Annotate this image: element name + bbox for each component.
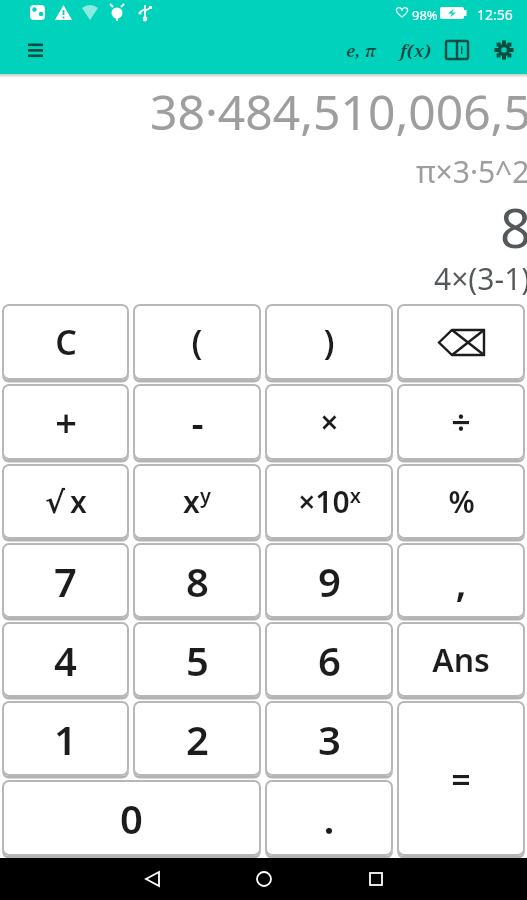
- staticText: 38·484,510,006,5: [150, 79, 527, 144]
- button[interactable]: [344, 858, 408, 900]
- staticText: 12:56: [477, 5, 513, 24]
- button[interactable]: .: [265, 780, 393, 856]
- button[interactable]: 7: [2, 543, 129, 618]
- button[interactable]: C: [2, 304, 129, 380]
- staticText: +: [55, 396, 77, 448]
- button[interactable]: 1: [2, 701, 129, 776]
- staticText: =: [451, 756, 471, 802]
- staticText: xy: [183, 481, 211, 522]
- staticText: 4×(3-1): [434, 258, 527, 299]
- button[interactable]: 6: [265, 622, 393, 697]
- button[interactable]: ,: [397, 543, 525, 618]
- staticText: ): [323, 319, 335, 365]
- button[interactable]: f(x): [392, 39, 439, 62]
- button[interactable]: [397, 304, 525, 380]
- staticText: √ x: [45, 481, 87, 522]
- staticText: 2: [186, 712, 209, 766]
- staticText: 98%: [412, 6, 438, 24]
- staticText: π×3·5^2: [416, 151, 527, 192]
- button[interactable]: [441, 36, 473, 64]
- staticText: 4: [54, 633, 77, 687]
- button[interactable]: +: [2, 384, 129, 460]
- staticText: (: [191, 319, 203, 365]
- staticText: 9: [318, 554, 341, 608]
- button[interactable]: 3: [265, 701, 393, 776]
- button[interactable]: ÷: [397, 384, 525, 460]
- button[interactable]: 8: [133, 543, 261, 618]
- button[interactable]: ×: [265, 384, 393, 460]
- staticText: %: [448, 481, 475, 522]
- staticText: C: [55, 319, 77, 365]
- staticText: ×10x: [298, 481, 361, 522]
- button[interactable]: %: [397, 464, 525, 539]
- staticText: ,: [455, 554, 467, 608]
- staticText: 6: [318, 633, 341, 687]
- button[interactable]: e, π: [338, 39, 384, 62]
- button[interactable]: =: [397, 701, 525, 856]
- button[interactable]: [120, 858, 184, 900]
- staticText: 3: [318, 712, 341, 766]
- staticText: 1: [54, 712, 77, 766]
- staticText: 0: [120, 791, 143, 845]
- staticText: 8: [500, 190, 527, 264]
- button[interactable]: [232, 858, 296, 900]
- button[interactable]: 0: [2, 780, 261, 856]
- staticText: ×: [320, 400, 339, 444]
- button[interactable]: ): [265, 304, 393, 380]
- staticText: 8: [186, 554, 209, 608]
- button[interactable]: 9: [265, 543, 393, 618]
- button[interactable]: -: [133, 384, 261, 460]
- staticText: ÷: [451, 399, 471, 445]
- button[interactable]: xy: [133, 464, 261, 539]
- staticText: f(x): [400, 39, 431, 62]
- button[interactable]: 2: [133, 701, 261, 776]
- staticText: -: [191, 396, 204, 448]
- button[interactable]: Ans: [397, 622, 525, 697]
- staticText: 7: [54, 554, 77, 608]
- staticText: Ans: [432, 638, 490, 682]
- button[interactable]: [491, 37, 517, 63]
- staticText: .: [323, 791, 335, 845]
- button[interactable]: √ x: [2, 464, 129, 539]
- button[interactable]: (: [133, 304, 261, 380]
- staticText: 5: [186, 633, 209, 687]
- button[interactable]: [20, 34, 52, 66]
- button[interactable]: 5: [133, 622, 261, 697]
- button[interactable]: 4: [2, 622, 129, 697]
- button[interactable]: ×10x: [265, 464, 393, 539]
- staticText: e, π: [346, 39, 376, 62]
